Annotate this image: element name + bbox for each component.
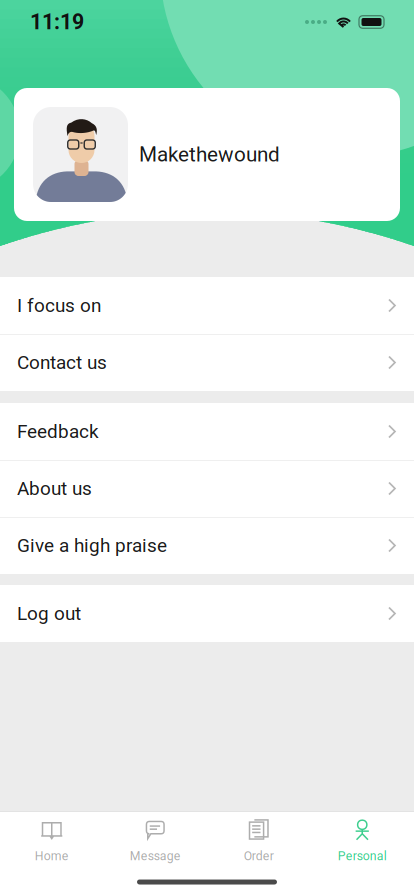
button[interactable]: Contact us <box>0 334 414 391</box>
staticText: Makethewound <box>139 142 280 167</box>
staticText: About us <box>17 477 92 500</box>
staticText: Log out <box>17 602 81 625</box>
staticText: Home <box>35 849 69 863</box>
staticText: Message <box>130 849 181 863</box>
button[interactable]: Home <box>0 811 103 869</box>
button[interactable]: Personal <box>310 811 414 869</box>
button[interactable]: Makethewound <box>0 88 414 221</box>
button[interactable]: About us <box>0 460 414 517</box>
staticText: Feedback <box>17 420 99 443</box>
button[interactable]: Log out <box>0 585 414 642</box>
staticText: 11:19 <box>30 9 84 34</box>
button[interactable]: Give a high praise <box>0 517 414 574</box>
button[interactable]: Feedback <box>0 403 414 460</box>
button[interactable]: I focus on <box>0 277 414 334</box>
staticText: Order <box>244 849 274 863</box>
staticText: I focus on <box>17 294 101 317</box>
staticText: Give a high praise <box>17 534 167 557</box>
button[interactable]: Message <box>103 811 207 869</box>
staticText: Personal <box>338 849 387 863</box>
staticText: Contact us <box>17 351 107 374</box>
button[interactable]: Order <box>207 811 310 869</box>
